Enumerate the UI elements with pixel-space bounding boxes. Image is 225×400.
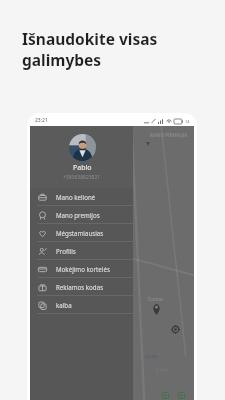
staticText: 23:21	[35, 117, 48, 124]
button[interactable]: Pablo	[30, 126, 133, 188]
staticText: Profilis	[56, 247, 76, 255]
button[interactable]: Share location	[161, 391, 170, 400]
staticText: count	[145, 353, 158, 359]
button[interactable]: Open in app	[177, 391, 186, 400]
staticText: galimybes	[22, 49, 102, 70]
staticText: MANO PIRMAUJA	[150, 132, 188, 138]
staticText: Išnaudokite visas	[22, 28, 158, 49]
button[interactable]: kalba	[30, 296, 133, 314]
button[interactable]: Profilis	[30, 242, 133, 260]
staticText: kalba	[56, 301, 72, 309]
button[interactable]: Mano premijos	[30, 206, 133, 224]
staticText: Mano kelionė	[56, 193, 96, 201]
staticText: Reklamos kodas	[56, 283, 104, 291]
button[interactable]: Reklamos kodas	[30, 278, 133, 296]
button[interactable]: Mano kelionė	[30, 188, 133, 206]
staticText: Mokėjimo kortelės	[56, 265, 110, 273]
staticText: 14	[185, 119, 190, 124]
staticText: Mano premijos	[56, 211, 100, 219]
staticText: Darbas	[148, 296, 164, 302]
button[interactable]: My location	[170, 324, 181, 335]
button[interactable]: Mokėjimo kortelės	[30, 260, 133, 278]
staticText: +380638823821	[63, 174, 101, 181]
staticText: Pablo	[73, 163, 92, 173]
button[interactable]: Mėgstamiausias	[30, 224, 133, 242]
staticText: Mėgstamiausias	[56, 229, 104, 237]
